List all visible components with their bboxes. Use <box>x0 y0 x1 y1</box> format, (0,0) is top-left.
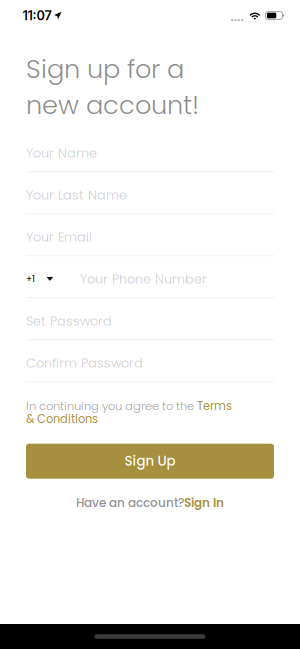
button[interactable]: Have an account? <box>26 494 274 511</box>
staticText: & Conditions <box>26 411 98 427</box>
staticText: Have an account? <box>76 494 184 511</box>
staticText: In continuing you agree to the <box>26 398 197 414</box>
staticText: 11:07 <box>22 8 51 23</box>
staticText: Sign Up <box>124 452 175 471</box>
staticText: +1 <box>26 273 35 285</box>
staticText: Your Last Name <box>26 186 127 204</box>
button[interactable]: Sign Up <box>26 444 274 479</box>
staticText: Your Phone Number <box>80 270 207 288</box>
staticText: Set Password <box>26 312 112 330</box>
staticText: Terms <box>197 398 232 414</box>
button[interactable]: Country code <box>26 261 53 297</box>
staticText: Sign In <box>184 494 224 511</box>
button[interactable]: Terms <box>197 398 232 414</box>
button[interactable]: & Conditions <box>26 411 98 427</box>
staticText: Confirm Password <box>26 354 143 372</box>
staticText: Your Email <box>26 228 92 246</box>
staticText: Sign up for a new account! <box>26 51 199 123</box>
staticText: Your Name <box>26 144 97 162</box>
